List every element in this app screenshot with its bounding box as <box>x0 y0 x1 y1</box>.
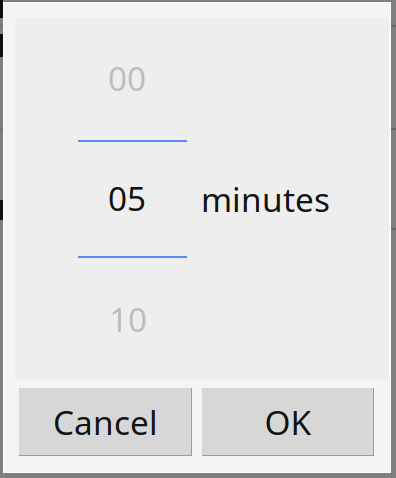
staticText: 00 <box>108 55 146 101</box>
staticText: 10 <box>109 296 147 342</box>
staticText: OK <box>264 399 311 445</box>
staticText: 05 <box>108 175 146 221</box>
staticText: minutes <box>201 176 330 222</box>
button[interactable]: Cancel <box>19 388 192 456</box>
button[interactable]: OK <box>202 388 374 456</box>
staticText: Cancel <box>53 399 158 445</box>
